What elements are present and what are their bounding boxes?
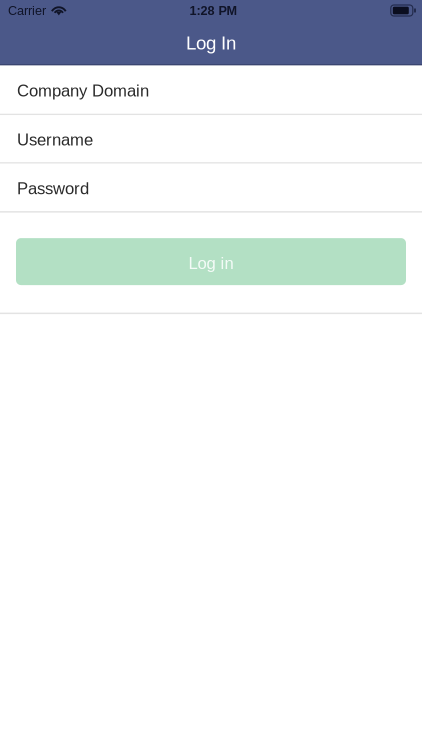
button[interactable]: Password [0, 164, 422, 213]
staticText: Password [17, 179, 89, 198]
staticText: Carrier [8, 3, 46, 18]
button[interactable]: Log in [16, 238, 406, 285]
staticText: 1:28 PM [189, 3, 237, 18]
button[interactable]: Company Domain [0, 66, 422, 115]
button[interactable]: Username [0, 115, 422, 164]
staticText: Username [17, 130, 93, 149]
staticText: Log In [186, 33, 236, 53]
staticText: Company Domain [17, 81, 149, 100]
staticText: Log in [188, 254, 233, 272]
